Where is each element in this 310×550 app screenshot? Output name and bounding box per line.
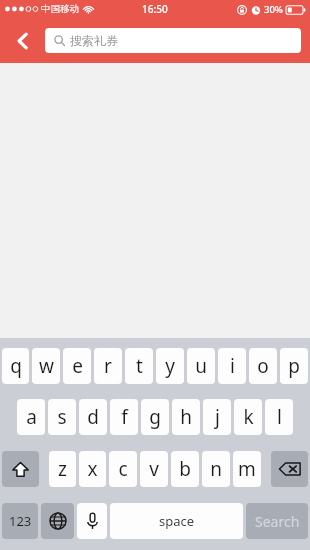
button[interactable]: k	[234, 399, 262, 435]
button[interactable]: Shift	[2, 451, 39, 487]
staticText: a	[26, 404, 37, 430]
staticText: x	[87, 456, 98, 482]
button[interactable]: r	[94, 348, 122, 384]
button[interactable]: u	[187, 348, 215, 384]
button[interactable]: t	[125, 348, 153, 384]
button[interactable]: b	[171, 451, 199, 487]
staticText: d	[87, 404, 99, 430]
button[interactable]: s	[48, 399, 76, 435]
button[interactable]: w	[32, 348, 60, 384]
button[interactable]: h	[172, 399, 200, 435]
staticText: r	[104, 353, 112, 379]
button[interactable]: n	[202, 451, 230, 487]
staticText: q	[10, 353, 22, 379]
staticText: 30%	[264, 3, 283, 16]
button[interactable]: Voice input	[77, 503, 107, 539]
button[interactable]: d	[79, 399, 107, 435]
staticText: k	[243, 404, 254, 430]
button[interactable]: Back	[6, 24, 40, 58]
button[interactable]: 123	[2, 503, 38, 539]
staticText: o	[257, 353, 269, 379]
staticText: u	[195, 353, 207, 379]
staticText: i	[230, 353, 235, 379]
button[interactable]: f	[110, 399, 138, 435]
button[interactable]: g	[141, 399, 169, 435]
button[interactable]: m	[233, 451, 261, 487]
button[interactable]: e	[63, 348, 91, 384]
staticText: z	[58, 456, 67, 482]
button[interactable]: i	[218, 348, 246, 384]
staticText: w	[39, 353, 54, 379]
staticText: h	[180, 404, 192, 430]
button[interactable]: j	[203, 399, 231, 435]
staticText: 搜索礼券	[70, 33, 118, 48]
button[interactable]: v	[140, 451, 168, 487]
staticText: v	[149, 456, 159, 482]
staticText: m	[238, 456, 256, 482]
button[interactable]: p	[280, 348, 308, 384]
staticText: f	[121, 404, 128, 430]
button[interactable]: Backspace	[271, 451, 308, 487]
staticText: 123	[9, 512, 32, 530]
button[interactable]: 搜索礼券	[45, 28, 301, 53]
staticText: space	[159, 512, 195, 530]
staticText: Search	[255, 512, 300, 531]
button[interactable]: l	[265, 399, 293, 435]
staticText: n	[210, 456, 222, 482]
staticText: c	[118, 456, 128, 482]
staticText: 中国移动	[41, 3, 79, 15]
button[interactable]: q	[2, 348, 29, 384]
staticText: p	[288, 353, 300, 379]
staticText: s	[57, 404, 67, 430]
button[interactable]: space	[110, 503, 243, 539]
staticText: e	[72, 353, 83, 379]
button[interactable]: Search	[246, 503, 308, 539]
staticText: g	[149, 404, 161, 430]
button[interactable]: Switch keyboard	[41, 503, 74, 539]
button[interactable]: x	[79, 451, 106, 487]
button[interactable]: a	[17, 399, 45, 435]
staticText: l	[277, 404, 282, 430]
button[interactable]: o	[249, 348, 277, 384]
staticText: j	[215, 404, 220, 430]
button[interactable]: c	[109, 451, 137, 487]
staticText: y	[165, 353, 175, 379]
staticText: 16:50	[142, 2, 168, 16]
button[interactable]: y	[156, 348, 184, 384]
staticText: b	[179, 456, 191, 482]
staticText: t	[136, 353, 143, 379]
button[interactable]: z	[49, 451, 76, 487]
